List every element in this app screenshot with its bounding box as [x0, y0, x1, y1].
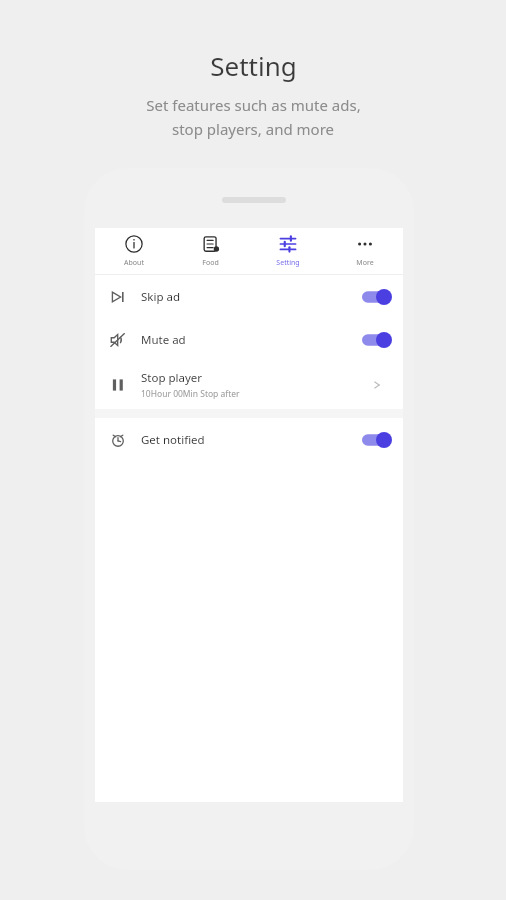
staticText: Setting — [210, 48, 297, 83]
button[interactable] — [362, 289, 392, 305]
button[interactable]: Setting — [249, 228, 326, 274]
button[interactable]: Skip ad — [95, 275, 403, 318]
button[interactable]: Get notified — [95, 418, 403, 461]
staticText: Mute ad — [141, 332, 186, 348]
staticText: 10Hour 00Min Stop after — [141, 388, 240, 400]
staticText: Set features such as mute ads, — [146, 95, 361, 115]
button[interactable]: About — [95, 228, 172, 274]
staticText: Setting — [276, 258, 300, 268]
other: Stop player — [110, 377, 126, 393]
button[interactable]: Food — [172, 228, 249, 274]
other: Setting — [279, 235, 297, 253]
button[interactable]: Mute ad — [95, 318, 403, 361]
staticText: Skip ad — [141, 289, 181, 305]
other: About — [125, 235, 143, 253]
other: Food — [202, 235, 220, 253]
staticText: Food — [202, 258, 219, 268]
staticText: About — [124, 258, 144, 268]
other: Get notified — [110, 432, 126, 448]
button[interactable]: More — [326, 228, 403, 274]
staticText: Stop player — [141, 370, 203, 386]
other: More — [356, 235, 374, 253]
other: Open — [371, 379, 383, 391]
button[interactable] — [362, 332, 392, 348]
staticText: stop players, and more — [172, 119, 334, 139]
button[interactable] — [362, 432, 392, 448]
other: Mute ad — [110, 332, 126, 348]
staticText: More — [356, 258, 374, 268]
staticText: Get notified — [141, 432, 205, 448]
button[interactable]: Stop player — [95, 361, 403, 409]
other: Skip ad — [110, 289, 126, 305]
